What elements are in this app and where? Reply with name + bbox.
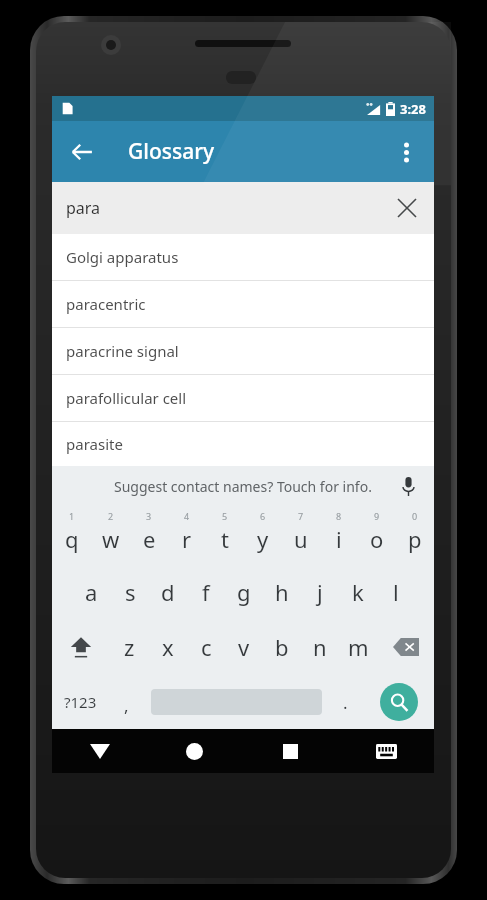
staticText: 8 bbox=[336, 510, 342, 522]
button[interactable]: Space bbox=[144, 674, 328, 729]
staticText: 0 bbox=[412, 510, 418, 522]
staticText: d bbox=[161, 577, 175, 607]
staticText: i bbox=[336, 524, 342, 554]
button[interactable]: 0 bbox=[396, 506, 434, 564]
button[interactable]: Voice input bbox=[392, 470, 424, 502]
button[interactable]: para bbox=[52, 182, 434, 234]
button[interactable]: 5 bbox=[206, 506, 244, 564]
staticText: paracentric bbox=[66, 294, 146, 314]
staticText: , bbox=[124, 694, 129, 717]
staticText: z bbox=[124, 632, 135, 662]
button[interactable]: 3 bbox=[130, 506, 168, 564]
staticText: t bbox=[221, 524, 229, 554]
staticText: l bbox=[393, 577, 399, 607]
staticText: g bbox=[237, 577, 251, 607]
button[interactable]: Shift bbox=[52, 619, 110, 674]
staticText: para bbox=[66, 197, 101, 219]
button[interactable]: paracrine signal bbox=[52, 328, 434, 375]
staticText: Glossary bbox=[128, 137, 215, 166]
button[interactable]: parafollicular cell bbox=[52, 375, 434, 422]
button[interactable]: 7 bbox=[282, 506, 320, 564]
staticText: h bbox=[275, 577, 289, 607]
staticText: 4 bbox=[184, 510, 190, 522]
button[interactable]: f bbox=[187, 564, 225, 619]
staticText: y bbox=[257, 524, 269, 554]
button[interactable]: Golgi apparatus bbox=[52, 234, 434, 281]
button[interactable]: paracentric bbox=[52, 281, 434, 328]
button[interactable]: l bbox=[377, 564, 415, 619]
staticText: u bbox=[294, 524, 308, 554]
button[interactable]: b bbox=[263, 619, 301, 674]
button[interactable]: 1 bbox=[52, 506, 91, 564]
staticText: a bbox=[85, 577, 98, 607]
button[interactable]: , bbox=[109, 674, 144, 729]
staticText: 3:28 bbox=[400, 100, 426, 118]
staticText: p bbox=[408, 524, 422, 554]
staticText: w bbox=[102, 524, 120, 554]
button[interactable]: c bbox=[187, 619, 225, 674]
button[interactable]: parasite bbox=[52, 422, 434, 466]
staticText: 6 bbox=[260, 510, 266, 522]
button[interactable]: Backspace bbox=[377, 619, 434, 674]
staticText: r bbox=[182, 524, 192, 554]
staticText: b bbox=[275, 632, 289, 662]
staticText: f bbox=[202, 577, 210, 607]
staticText: q bbox=[65, 524, 79, 554]
staticText: v bbox=[238, 632, 250, 662]
staticText: o bbox=[370, 524, 384, 554]
staticText: 5 bbox=[222, 510, 228, 522]
button[interactable]: Suggest contact names? Touch for info. bbox=[52, 466, 434, 506]
button[interactable]: 9 bbox=[358, 506, 396, 564]
staticText: m bbox=[348, 632, 369, 662]
staticText: parafollicular cell bbox=[66, 388, 187, 408]
button[interactable]: ?123 bbox=[52, 674, 109, 729]
button[interactable]: s bbox=[111, 564, 149, 619]
button[interactable]: 2 bbox=[91, 506, 130, 564]
button[interactable]: n bbox=[301, 619, 339, 674]
staticText: parasite bbox=[66, 434, 123, 454]
button[interactable]: m bbox=[339, 619, 377, 674]
staticText: 2 bbox=[108, 510, 114, 522]
staticText: s bbox=[125, 577, 136, 607]
staticText: . bbox=[343, 691, 348, 714]
staticText: 7 bbox=[298, 510, 304, 522]
button[interactable]: More options bbox=[384, 130, 428, 174]
staticText: e bbox=[143, 524, 156, 554]
staticText: 3 bbox=[146, 510, 152, 522]
staticText: n bbox=[313, 632, 327, 662]
button[interactable]: Recent apps bbox=[242, 729, 338, 773]
staticText: 9 bbox=[374, 510, 380, 522]
staticText: ?123 bbox=[64, 692, 97, 712]
staticText: 1 bbox=[69, 510, 75, 522]
staticText: Golgi apparatus bbox=[66, 247, 179, 267]
button[interactable]: 4 bbox=[168, 506, 206, 564]
staticText: k bbox=[352, 577, 364, 607]
staticText: j bbox=[317, 577, 323, 607]
button[interactable]: h bbox=[263, 564, 301, 619]
button[interactable]: d bbox=[149, 564, 187, 619]
button[interactable]: v bbox=[225, 619, 263, 674]
button[interactable]: 8 bbox=[320, 506, 358, 564]
button[interactable]: Switch keyboard bbox=[338, 729, 434, 773]
button[interactable]: k bbox=[339, 564, 377, 619]
staticText: Suggest contact names? Touch for info. bbox=[114, 477, 372, 496]
button[interactable]: Back bbox=[60, 130, 104, 174]
button[interactable]: Hide keyboard bbox=[52, 729, 147, 773]
button[interactable]: a bbox=[72, 564, 111, 619]
staticText: x bbox=[162, 632, 174, 662]
button[interactable]: g bbox=[225, 564, 263, 619]
button[interactable]: Home bbox=[147, 729, 242, 773]
staticText: c bbox=[201, 632, 212, 662]
button[interactable]: Clear search bbox=[388, 189, 426, 227]
staticText: paracrine signal bbox=[66, 341, 179, 361]
button[interactable]: z bbox=[110, 619, 149, 674]
button[interactable]: x bbox=[149, 619, 187, 674]
button[interactable]: j bbox=[301, 564, 339, 619]
button[interactable]: Search bbox=[363, 674, 434, 729]
button[interactable]: . bbox=[328, 674, 363, 729]
button[interactable]: 6 bbox=[244, 506, 282, 564]
